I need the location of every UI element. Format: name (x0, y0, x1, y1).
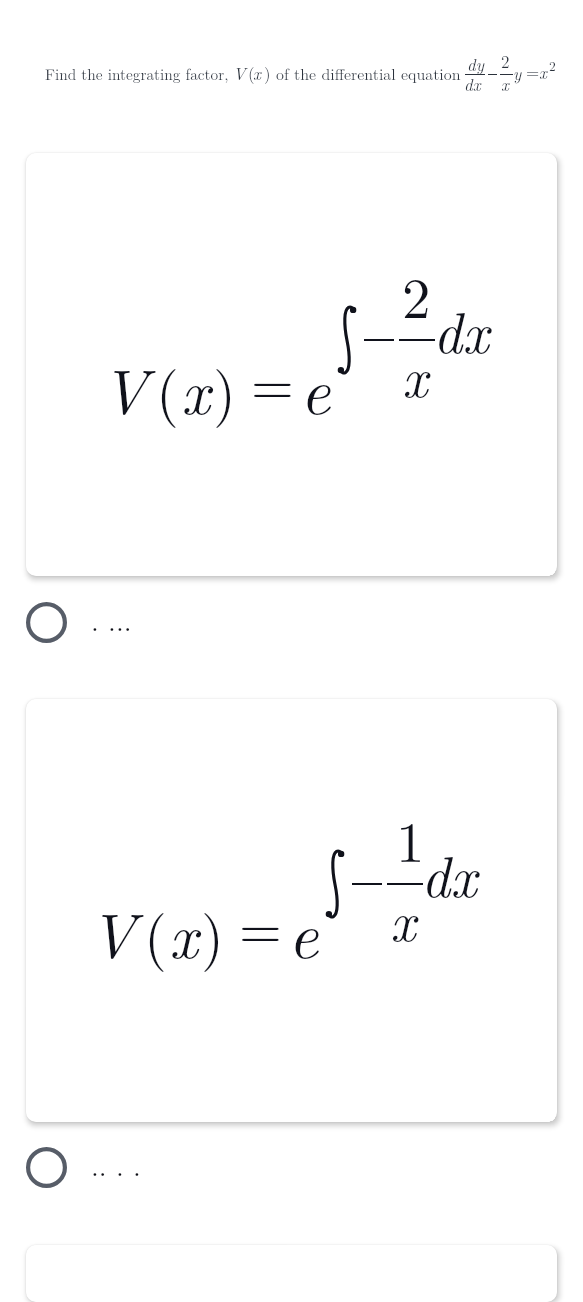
staticText: ( (144, 891, 167, 975)
staticText: x (253, 61, 261, 85)
staticText: ( (248, 61, 255, 85)
staticText: . ... (91, 599, 132, 639)
button[interactable]: .. . . (26, 1143, 138, 1191)
staticText: of the differential equation (276, 62, 461, 85)
staticText: = (239, 886, 282, 964)
staticText: 2 (402, 254, 431, 335)
staticText: x (390, 879, 416, 957)
staticText: V (233, 61, 246, 85)
staticText: dx (433, 289, 489, 370)
staticText: ( (156, 347, 179, 431)
staticText: 1 (396, 798, 425, 879)
button[interactable]: Answer option (26, 153, 557, 576)
staticText: .. . . (91, 1144, 141, 1184)
staticText: x (539, 60, 547, 84)
staticText: 2 (501, 49, 510, 73)
staticText: ) (264, 61, 271, 85)
staticText: e (288, 884, 319, 977)
staticText: dx (421, 833, 477, 914)
staticText: x (501, 72, 509, 96)
staticText: V (89, 887, 136, 976)
staticText: y (513, 61, 522, 85)
staticText: x (181, 344, 210, 432)
staticText: dx (464, 72, 481, 96)
staticText: ) (213, 347, 236, 431)
button[interactable]: . ... (26, 598, 129, 646)
staticText: V (101, 343, 148, 432)
staticText: = (526, 59, 540, 83)
staticText: x (402, 335, 428, 413)
staticText: 2 (549, 56, 556, 75)
staticText: = (251, 342, 294, 420)
staticText: x (169, 888, 198, 976)
staticText: dy (467, 52, 484, 76)
button[interactable]: Answer option (26, 699, 557, 1122)
staticText: ) (201, 891, 224, 975)
staticText: Find the integrating factor, (45, 63, 229, 85)
staticText: e (300, 340, 331, 433)
